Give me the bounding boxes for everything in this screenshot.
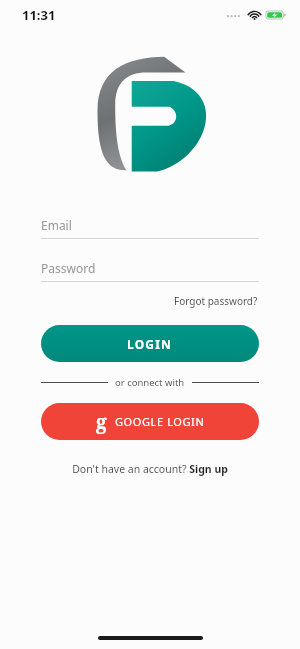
- staticText: Forgot password?: [174, 294, 258, 308]
- staticText: GOOGLE LOGIN: [115, 414, 205, 429]
- button[interactable]: Forgot password?: [173, 292, 259, 310]
- staticText: Password: [41, 260, 96, 276]
- staticText: g: [96, 409, 107, 435]
- button[interactable]: LOGIN: [41, 325, 259, 362]
- staticText: or connect with: [115, 376, 185, 389]
- staticText: Don't have an account? Sign up: [72, 462, 228, 476]
- staticText: LOGIN: [127, 336, 173, 352]
- staticText: Email: [41, 217, 72, 233]
- staticText: 11:31: [22, 6, 56, 24]
- button[interactable]: Don't have an account? Sign up: [69, 459, 231, 479]
- button[interactable]: Email: [41, 212, 259, 238]
- button[interactable]: g: [41, 403, 259, 440]
- button[interactable]: Password: [41, 255, 259, 281]
